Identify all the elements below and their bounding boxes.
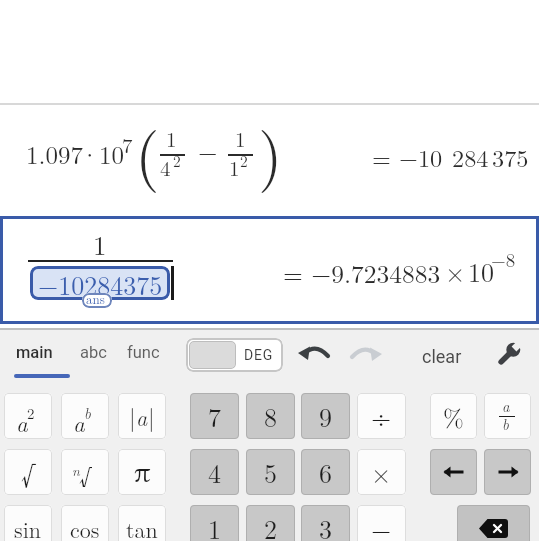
staticText: 1 <box>166 123 177 153</box>
staticText: ( <box>135 106 160 195</box>
button[interactable]: 4 <box>190 449 239 495</box>
staticText: 1 <box>208 510 222 541</box>
staticText: 3 <box>319 510 333 541</box>
button[interactable]: 7 <box>190 393 239 439</box>
button[interactable]: × <box>357 449 406 495</box>
staticText: abc <box>80 343 107 362</box>
staticText: ) <box>258 106 283 195</box>
staticText: sin <box>14 513 42 541</box>
staticText: n <box>72 460 80 480</box>
staticText: 10 <box>468 253 495 290</box>
button[interactable]: ÷ <box>357 393 406 439</box>
staticText: π <box>134 455 151 489</box>
staticText: −10284375 <box>38 266 163 300</box>
button[interactable] <box>76 336 116 378</box>
button[interactable]: − <box>357 505 406 541</box>
button[interactable] <box>350 344 382 368</box>
staticText: 1.097 <box>26 136 83 171</box>
button[interactable]: 9 <box>301 393 350 439</box>
button[interactable]: a <box>484 393 531 439</box>
staticText: DEG <box>244 347 274 363</box>
button[interactable]: √ <box>4 449 52 495</box>
staticText: 7 <box>208 398 222 435</box>
button[interactable]: a <box>61 393 109 439</box>
staticText: 284 <box>452 140 489 174</box>
staticText: a <box>73 406 85 437</box>
staticText: | <box>129 399 136 433</box>
button[interactable]: π <box>118 449 166 495</box>
staticText: 2 <box>27 402 35 423</box>
staticText: b <box>84 402 91 423</box>
button[interactable]: clear <box>414 336 470 376</box>
staticText: a <box>16 406 28 437</box>
button[interactable]: a <box>4 393 52 439</box>
staticText: 4 <box>160 152 171 182</box>
button[interactable]: 1 <box>190 505 239 541</box>
staticText: −8 <box>491 246 516 273</box>
staticText: = −10 <box>372 140 443 174</box>
staticText: ans <box>86 289 105 307</box>
staticText: − <box>371 510 392 541</box>
button[interactable] <box>10 336 72 378</box>
staticText: 7 <box>122 129 133 159</box>
staticText: ÷ <box>371 398 392 435</box>
staticText: 5 <box>264 454 278 491</box>
staticText: × <box>371 454 392 491</box>
staticText: func <box>127 343 160 362</box>
staticText: √ <box>79 457 92 487</box>
button[interactable]: cos <box>61 505 109 541</box>
button[interactable]: DEG <box>186 338 283 372</box>
button[interactable]: 6 <box>301 449 350 495</box>
staticText: tan <box>126 513 158 541</box>
staticText: × <box>445 253 466 290</box>
button[interactable]: sin <box>4 505 52 541</box>
staticText: √ <box>21 452 35 493</box>
staticText: 375 <box>492 140 529 174</box>
staticText: 2 <box>173 150 181 172</box>
button[interactable]: 2 <box>246 505 295 541</box>
staticText: 6 <box>319 454 333 491</box>
staticText: 10 <box>99 136 125 171</box>
button[interactable] <box>457 505 530 541</box>
staticText: 2 <box>264 510 278 541</box>
button[interactable]: 5 <box>246 449 295 495</box>
staticText: main <box>16 343 53 362</box>
staticText: clear <box>422 346 462 367</box>
staticText: − <box>198 133 218 168</box>
staticText: % <box>443 399 464 434</box>
button[interactable] <box>0 216 539 324</box>
button[interactable] <box>493 340 523 370</box>
button[interactable] <box>122 336 170 378</box>
staticText: a <box>136 401 148 432</box>
button[interactable] <box>430 449 477 495</box>
staticText: 1 <box>235 123 246 153</box>
staticText: cos <box>70 513 100 541</box>
staticText: · <box>80 136 100 171</box>
button[interactable]: n <box>61 449 109 495</box>
button[interactable] <box>0 104 539 216</box>
staticText: a <box>502 395 510 416</box>
staticText: 1 <box>229 152 240 182</box>
staticText: | <box>148 399 155 433</box>
staticText: = −9.7234883 <box>283 254 441 290</box>
staticText: 4 <box>208 454 222 491</box>
staticText: 9 <box>319 398 333 435</box>
button[interactable]: 3 <box>301 505 350 541</box>
staticText: b <box>502 413 509 434</box>
button[interactable] <box>484 449 531 495</box>
button[interactable]: % <box>430 393 477 439</box>
staticText: 8 <box>264 398 278 435</box>
button[interactable]: | <box>118 393 166 439</box>
staticText: 1 <box>93 225 107 263</box>
button[interactable] <box>298 343 330 367</box>
button[interactable]: 8 <box>246 393 295 439</box>
staticText: 2 <box>240 150 248 172</box>
button[interactable]: tan <box>118 505 166 541</box>
